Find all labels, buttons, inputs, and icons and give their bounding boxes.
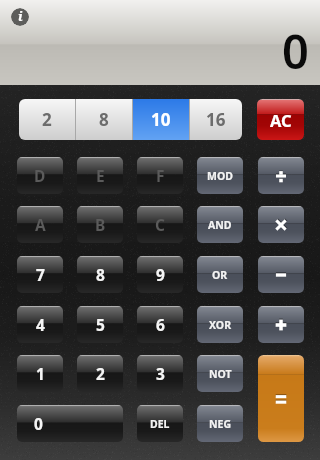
- button[interactable]: 1: [17, 355, 63, 392]
- button[interactable]: 3: [137, 355, 183, 392]
- staticText: F: [156, 165, 165, 186]
- button[interactable]: Multiply: [258, 206, 304, 243]
- staticText: 2: [42, 108, 52, 131]
- staticText: C: [155, 214, 165, 235]
- button[interactable]: 9: [137, 256, 183, 293]
- button[interactable]: 10: [133, 99, 189, 140]
- button[interactable]: Plus: [258, 306, 304, 343]
- staticText: AND: [208, 218, 232, 232]
- staticText: 8: [99, 108, 109, 131]
- staticText: B: [95, 214, 106, 235]
- staticText: 7: [36, 264, 45, 285]
- button[interactable]: NOT: [197, 355, 243, 392]
- staticText: 0: [34, 413, 43, 434]
- button[interactable]: Equals: [258, 355, 304, 442]
- button[interactable]: A: [17, 206, 63, 243]
- staticText: 5: [96, 314, 105, 335]
- staticText: 1: [36, 363, 45, 384]
- button[interactable]: OR: [197, 256, 243, 293]
- staticText: 3: [156, 363, 165, 384]
- button[interactable]: 6: [137, 306, 183, 343]
- button[interactable]: C: [137, 206, 183, 243]
- button[interactable]: 5: [77, 306, 123, 343]
- button[interactable]: B: [77, 206, 123, 243]
- staticText: XOR: [209, 318, 232, 332]
- button[interactable]: E: [77, 157, 123, 194]
- staticText: NOT: [209, 367, 232, 381]
- button[interactable]: DEL: [137, 405, 183, 442]
- staticText: 6: [156, 314, 165, 335]
- staticText: i: [18, 8, 23, 25]
- button[interactable]: XOR: [197, 306, 243, 343]
- staticText: 9: [156, 264, 165, 285]
- staticText: DEL: [150, 417, 170, 431]
- staticText: OR: [212, 268, 228, 282]
- staticText: AC: [270, 109, 292, 131]
- button[interactable]: NEG: [197, 405, 243, 442]
- button[interactable]: 2: [77, 355, 123, 392]
- staticText: 2: [96, 363, 105, 384]
- button[interactable]: 0: [17, 405, 123, 442]
- staticText: 16: [206, 108, 226, 131]
- button[interactable]: AND: [197, 206, 243, 243]
- button[interactable]: 7: [17, 256, 63, 293]
- staticText: 0: [282, 19, 309, 83]
- button[interactable]: 8: [77, 256, 123, 293]
- button[interactable]: 4: [17, 306, 63, 343]
- button[interactable]: Minus: [258, 256, 304, 293]
- staticText: E: [96, 165, 105, 186]
- button[interactable]: F: [137, 157, 183, 194]
- button[interactable]: D: [17, 157, 63, 194]
- button[interactable]: 2: [19, 99, 75, 140]
- button[interactable]: 8: [76, 99, 132, 140]
- staticText: 10: [151, 108, 171, 131]
- staticText: 4: [36, 314, 45, 335]
- staticText: MOD: [207, 169, 233, 183]
- button[interactable]: 16: [190, 99, 242, 140]
- button[interactable]: AC: [257, 99, 304, 140]
- staticText: A: [35, 214, 46, 235]
- staticText: D: [34, 165, 46, 186]
- button[interactable]: Info: [11, 8, 29, 26]
- button[interactable]: Divide: [258, 157, 304, 194]
- staticText: 8: [96, 264, 105, 285]
- staticText: NEG: [209, 417, 232, 431]
- button[interactable]: MOD: [197, 157, 243, 194]
